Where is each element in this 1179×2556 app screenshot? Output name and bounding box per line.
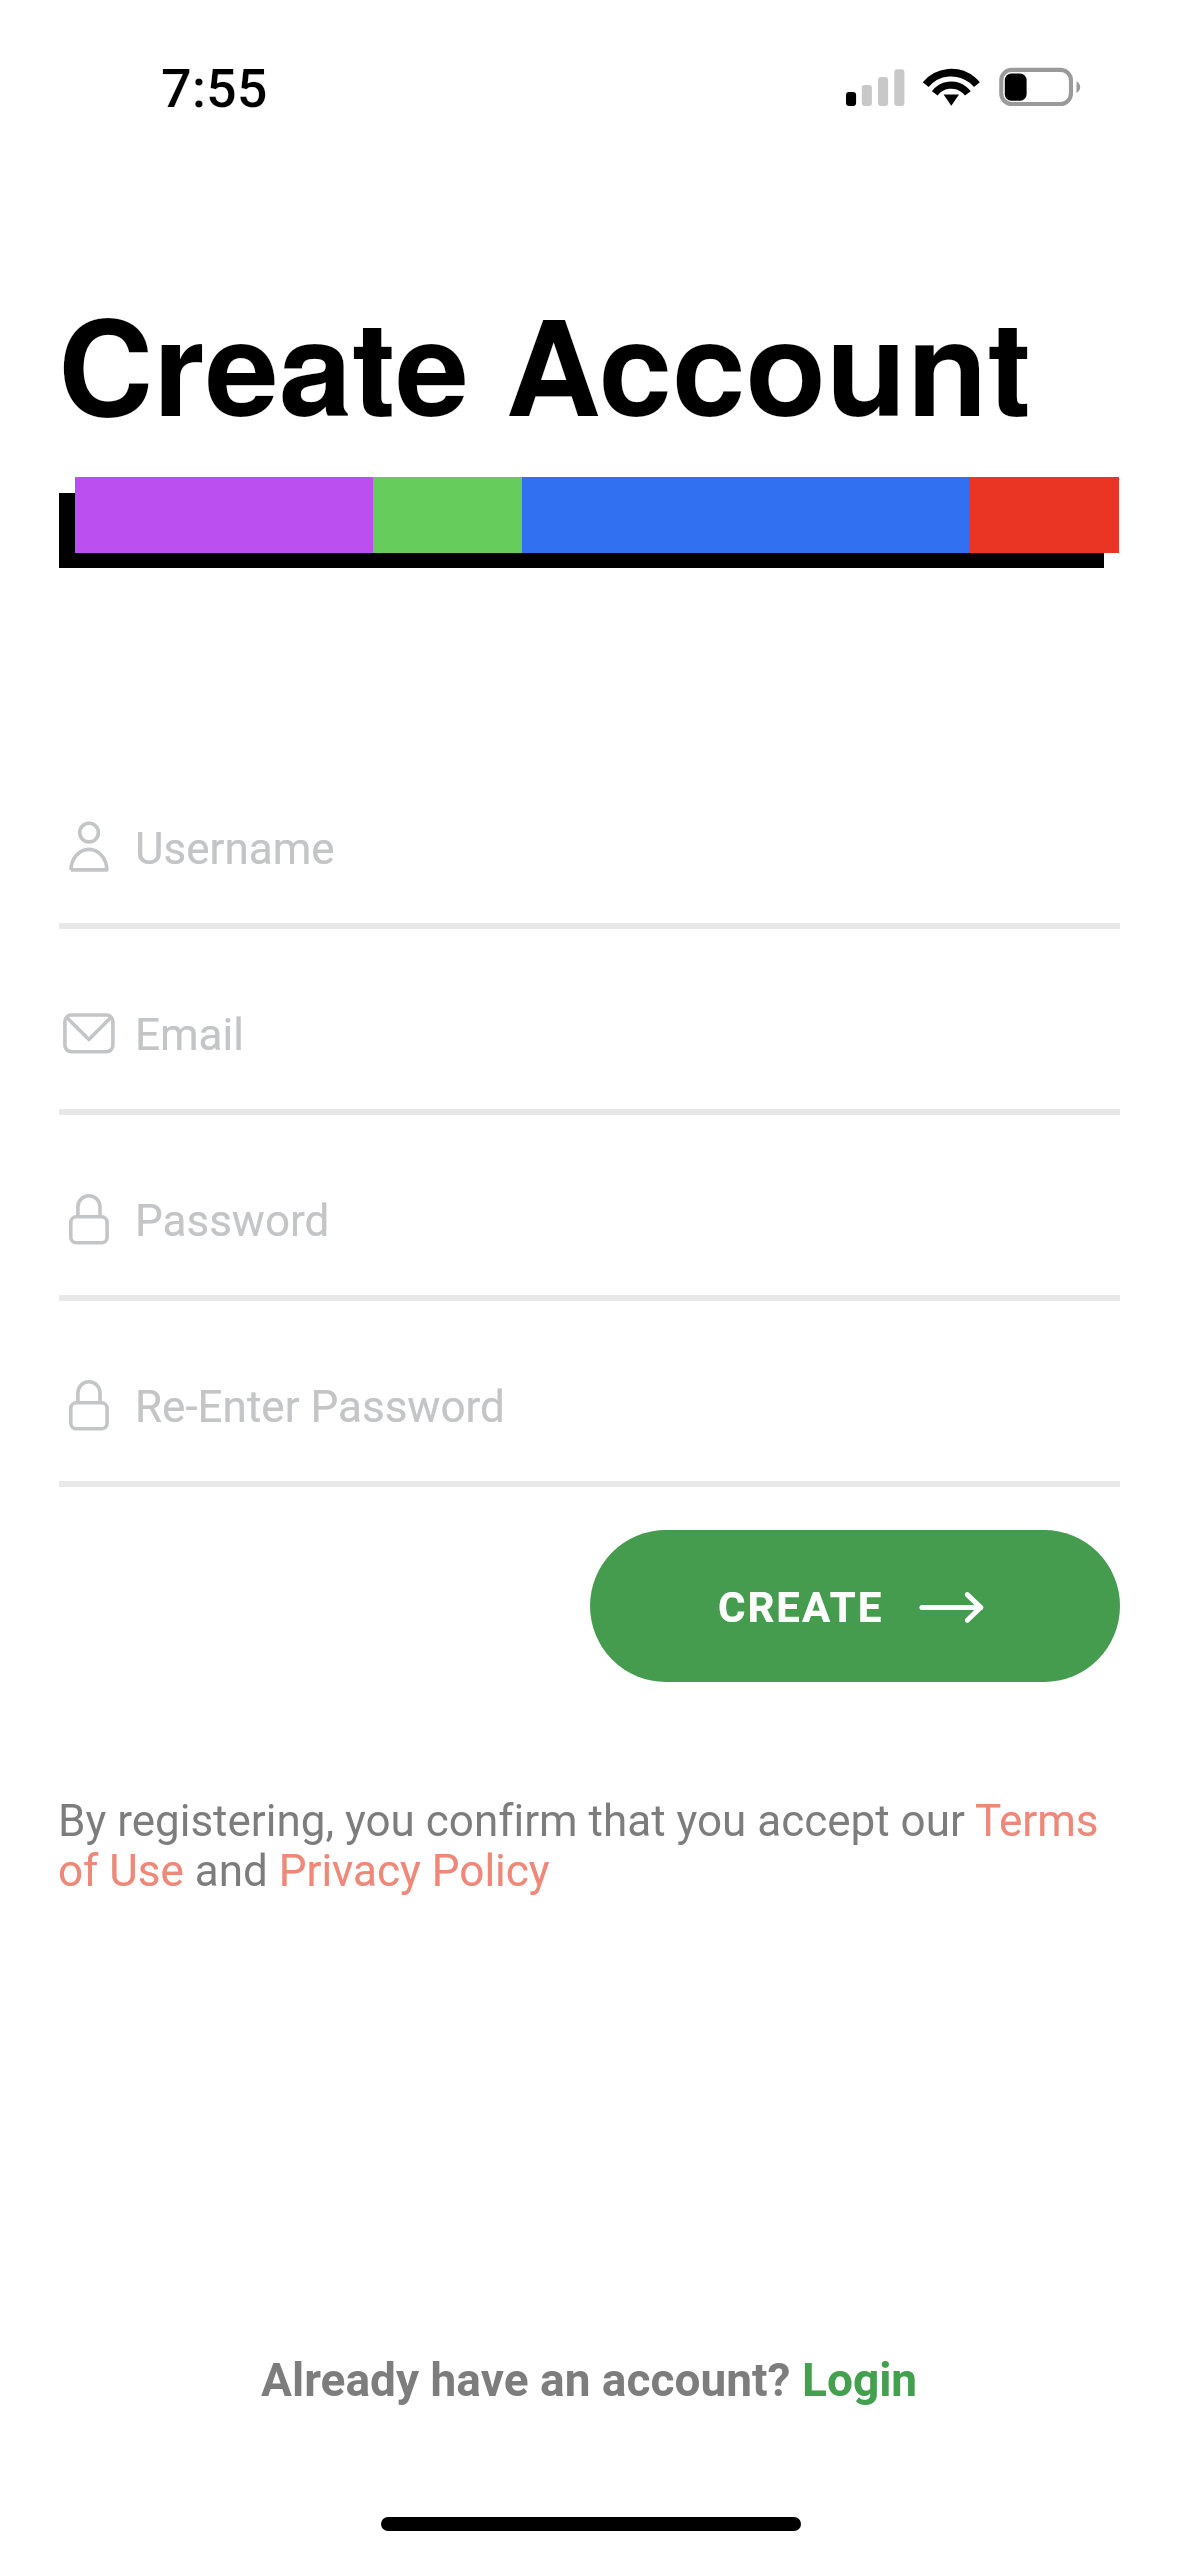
staticText: Already have an account? Login [261, 2353, 918, 2407]
button[interactable]: Terms of Use and Privacy Policy [58, 1795, 1118, 1907]
staticText: 7:55 [161, 57, 268, 120]
button[interactable]: Email [0, 998, 1179, 1108]
button[interactable]: CREATE [590, 1530, 1120, 1682]
button[interactable]: Password [0, 1184, 1179, 1294]
staticText: Password [135, 1195, 330, 1247]
staticText: Username [135, 823, 335, 875]
button[interactable]: Username [0, 812, 1179, 922]
staticText: By registering, you confirm that you acc… [58, 1795, 1118, 1897]
staticText: Email [135, 1009, 244, 1061]
staticText: Create Account [58, 267, 1032, 456]
button[interactable]: Re-Enter Password [0, 1370, 1179, 1480]
staticText: Re-Enter Password [135, 1381, 505, 1433]
staticText: CREATE [718, 1583, 884, 1632]
button[interactable]: Already have an account? Login [0, 2353, 1179, 2413]
other: Signal, Wi-Fi and battery status [840, 60, 1090, 112]
